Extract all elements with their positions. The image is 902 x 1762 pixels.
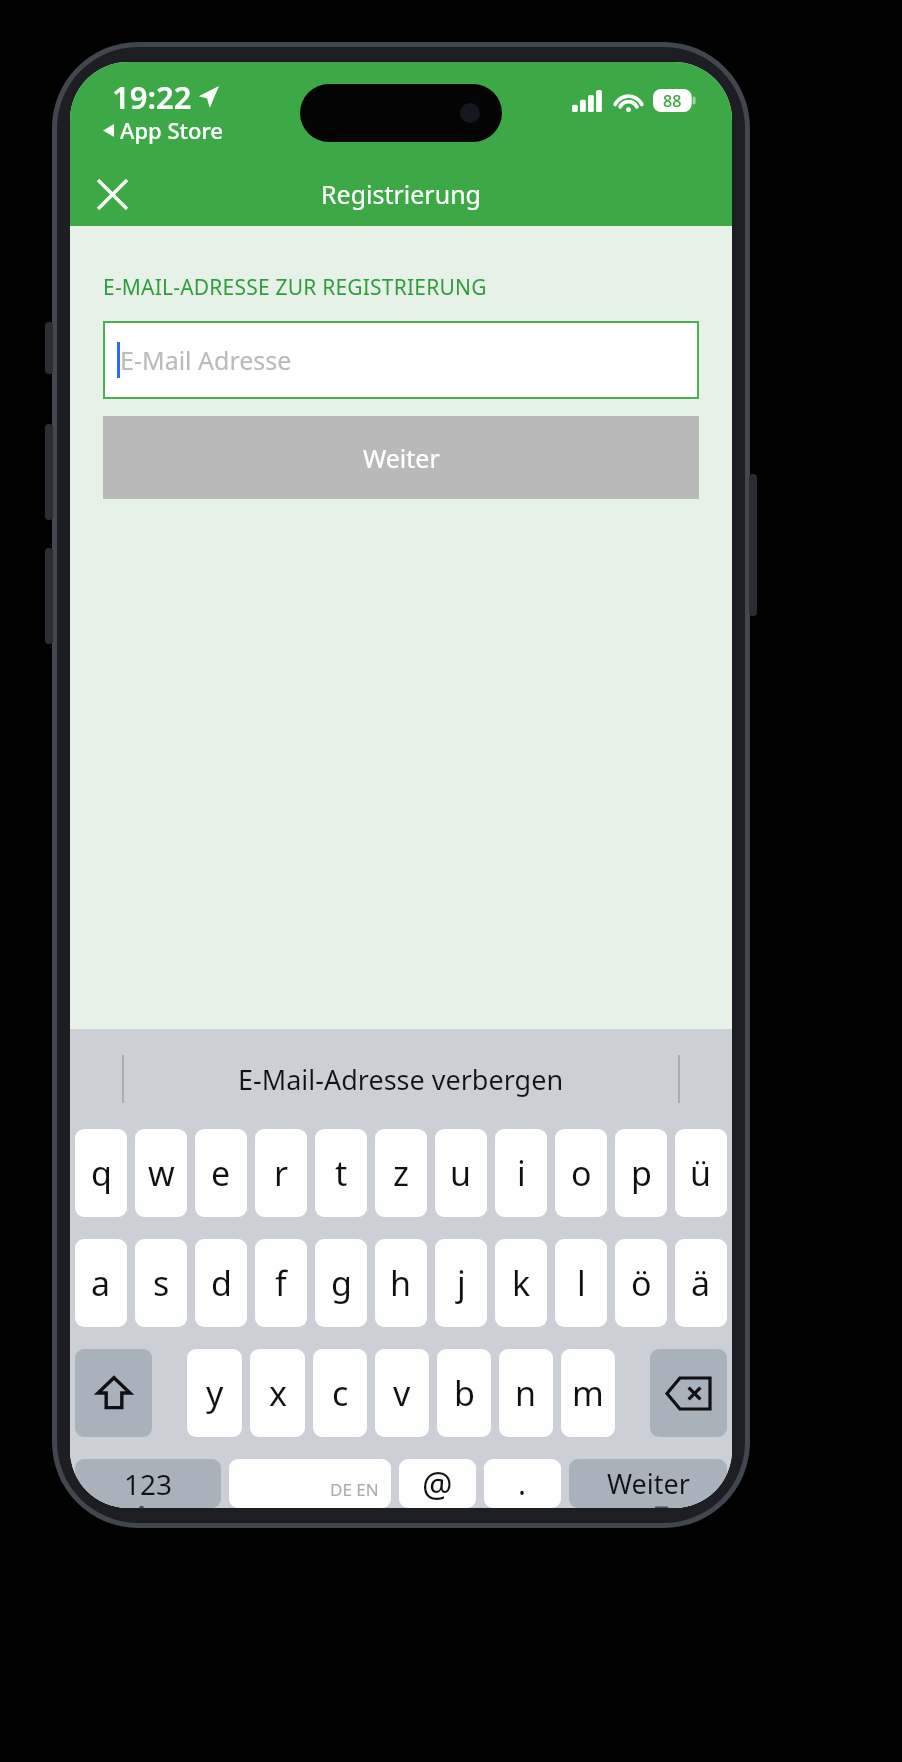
staticText: ü [690, 1150, 712, 1196]
button[interactable]: g [315, 1239, 367, 1327]
staticText: s [153, 1260, 170, 1306]
staticText: . [518, 1463, 527, 1504]
staticText: E-Mail Adresse [120, 343, 292, 377]
button[interactable]: Rücktaste [650, 1349, 727, 1437]
staticText: j [457, 1260, 466, 1306]
button[interactable]: e [195, 1129, 247, 1217]
button[interactable]: o [555, 1129, 607, 1217]
staticText: w [148, 1150, 175, 1196]
staticText: l [577, 1260, 586, 1306]
staticText: DE EN [330, 1478, 379, 1501]
button[interactable]: @ [399, 1459, 476, 1508]
staticText: 88 [663, 90, 682, 112]
staticText: n [515, 1370, 537, 1416]
staticText: o [571, 1150, 592, 1196]
button[interactable]: Schließen [84, 166, 140, 222]
button[interactable]: d [195, 1239, 247, 1327]
button[interactable]: ö [615, 1239, 667, 1327]
button[interactable]: q [75, 1129, 127, 1217]
staticText: App Store [120, 115, 223, 145]
button[interactable]: Weiter [569, 1459, 727, 1508]
staticText: v [393, 1370, 411, 1416]
button[interactable]: b [437, 1349, 491, 1437]
button[interactable]: f [255, 1239, 307, 1327]
button[interactable]: ä [675, 1239, 727, 1327]
button[interactable]: l [555, 1239, 607, 1327]
button[interactable]: m [561, 1349, 615, 1437]
staticText: E-MAIL-ADRESSE ZUR REGISTRIERUNG [103, 273, 487, 302]
button[interactable]: Weiter [103, 416, 699, 499]
button[interactable]: j [435, 1239, 487, 1327]
staticText: e [211, 1150, 231, 1196]
button[interactable]: n [499, 1349, 553, 1437]
staticText: h [390, 1260, 412, 1306]
staticText: ä [691, 1260, 711, 1306]
staticText: m [572, 1370, 604, 1416]
staticText: p [631, 1150, 652, 1196]
staticText: y [206, 1370, 224, 1416]
staticText: t [335, 1150, 348, 1196]
button[interactable]: Leertaste [229, 1459, 391, 1508]
staticText: d [211, 1260, 232, 1306]
staticText: i [517, 1150, 526, 1196]
button[interactable]: t [315, 1129, 367, 1217]
button[interactable]: ü [675, 1129, 727, 1217]
staticText: a [91, 1260, 111, 1306]
button[interactable]: p [615, 1129, 667, 1217]
staticText: g [331, 1260, 352, 1306]
button[interactable]: v [375, 1349, 429, 1437]
button[interactable]: w [135, 1129, 187, 1217]
staticText: ö [631, 1260, 652, 1306]
staticText: z [393, 1150, 409, 1196]
staticText: 123 [124, 1465, 173, 1503]
button[interactable]: k [495, 1239, 547, 1327]
button[interactable]: c [313, 1349, 367, 1437]
staticText: f [275, 1260, 287, 1306]
button[interactable]: E-Mail Adresse [103, 321, 699, 399]
staticText: c [332, 1370, 349, 1416]
staticText: Weiter [607, 1465, 690, 1502]
staticText: Weiter [363, 441, 440, 475]
button[interactable]: h [375, 1239, 427, 1327]
button[interactable]: r [255, 1129, 307, 1217]
staticText: @ [422, 1461, 453, 1507]
staticText: u [450, 1150, 472, 1196]
button[interactable]: . [484, 1459, 561, 1508]
button[interactable]: x [250, 1349, 305, 1437]
staticText: Registrierung [321, 177, 481, 211]
staticText: E-Mail-Adresse verbergen [238, 1061, 564, 1098]
button[interactable]: z [375, 1129, 427, 1217]
button[interactable]: 123 [75, 1459, 221, 1508]
button[interactable]: u [435, 1129, 487, 1217]
staticText: x [269, 1370, 287, 1416]
staticText: k [512, 1260, 531, 1306]
staticText: 19:22 [112, 76, 192, 118]
staticText: r [274, 1150, 289, 1196]
button[interactable]: Umschalt [75, 1349, 152, 1437]
button[interactable]: s [135, 1239, 187, 1327]
staticText: q [91, 1150, 112, 1196]
button[interactable]: y [187, 1349, 242, 1437]
staticText: b [454, 1370, 475, 1416]
button[interactable]: i [495, 1129, 547, 1217]
button[interactable]: a [75, 1239, 127, 1327]
